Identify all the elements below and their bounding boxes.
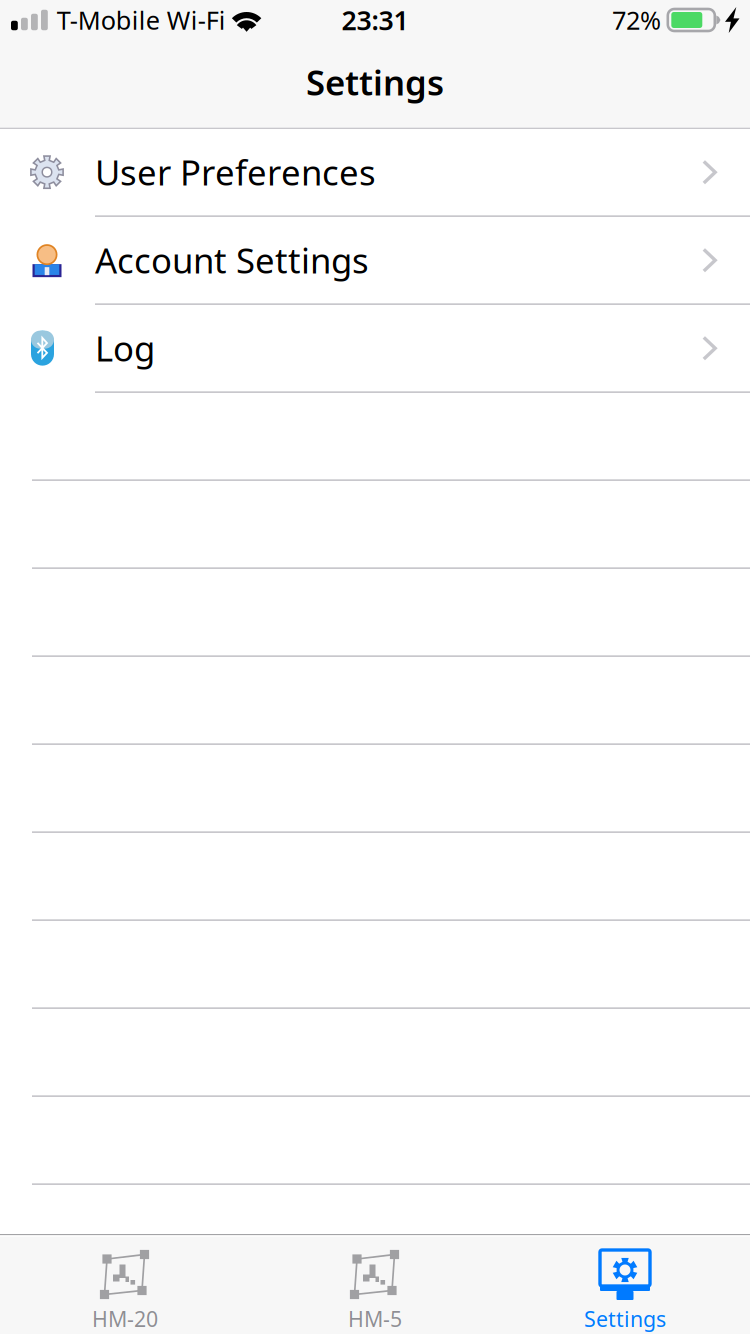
staticText: Account Settings	[95, 237, 369, 283]
staticText: T-Mobile Wi-Fi	[57, 3, 226, 37]
staticText: Log	[95, 325, 155, 371]
staticText: HM-5	[348, 1305, 402, 1333]
button[interactable]: Log	[0, 305, 750, 391]
button[interactable]: Settings	[500, 1234, 750, 1334]
button[interactable]: HM-5	[250, 1234, 500, 1334]
staticText: Settings	[306, 59, 444, 105]
staticText: User Preferences	[95, 149, 376, 195]
staticText: Settings	[584, 1305, 666, 1333]
button[interactable]: HM-20	[0, 1234, 250, 1334]
button[interactable]: Account Settings	[0, 217, 750, 303]
staticText: 72%	[612, 3, 661, 37]
staticText: 23:31	[341, 2, 408, 38]
button[interactable]: User Preferences	[0, 129, 750, 215]
staticText: HM-20	[92, 1305, 158, 1333]
